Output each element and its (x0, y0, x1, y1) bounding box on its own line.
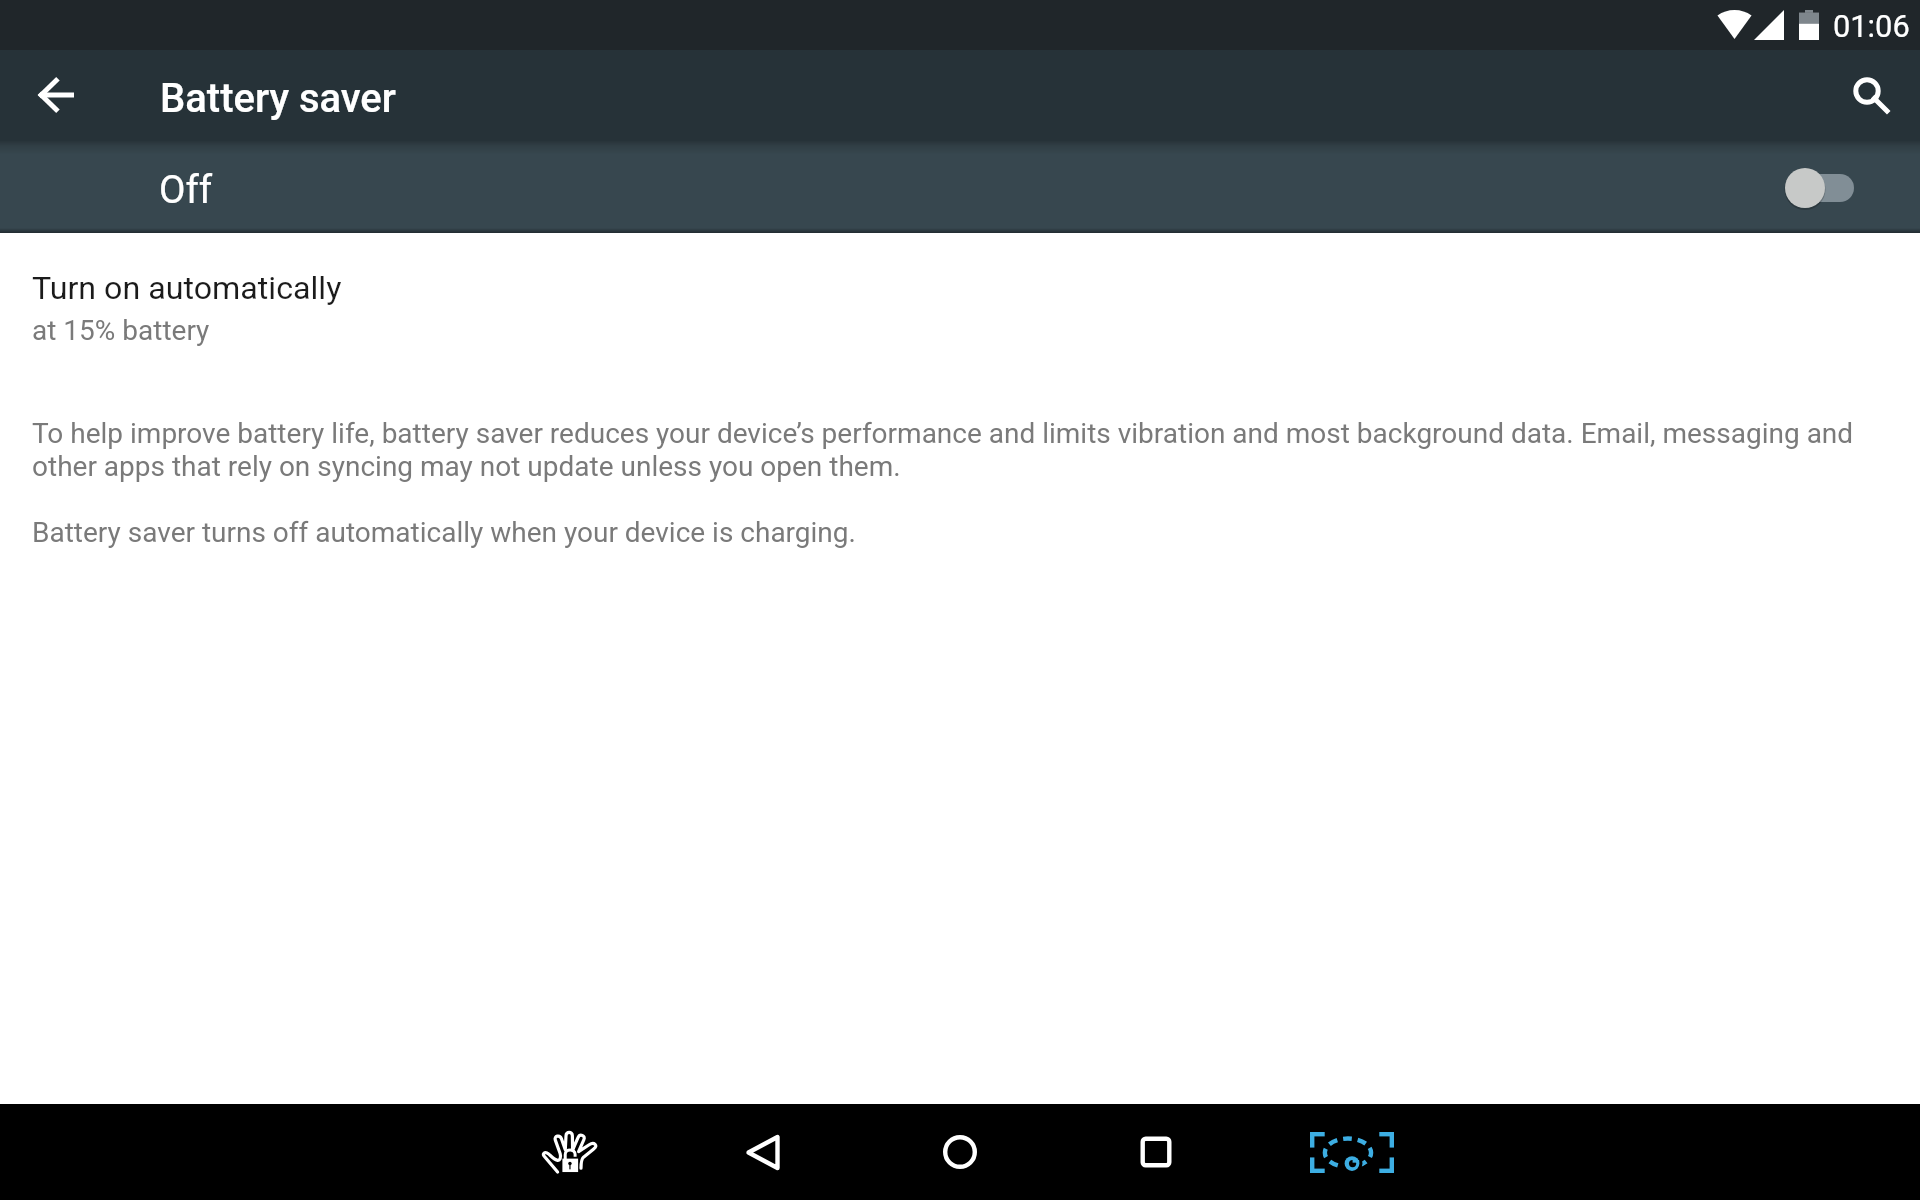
staticText: To help improve battery life, battery sa… (32, 417, 1888, 483)
button[interactable]: Off (0, 141, 1920, 233)
button[interactable]: Battery saver off (1770, 149, 1870, 221)
staticText: Battery saver (160, 75, 396, 122)
button[interactable]: Unpin screen (533, 1117, 605, 1189)
staticText: Turn on automatically (32, 269, 342, 307)
button[interactable]: Navigate up (24, 63, 88, 127)
button[interactable]: Home (924, 1116, 996, 1188)
staticText: Off (159, 167, 213, 212)
button[interactable]: Search (1839, 63, 1903, 127)
button[interactable]: Screen capture (1304, 1116, 1400, 1188)
button[interactable]: Back (727, 1116, 799, 1188)
button[interactable]: Overview (1120, 1116, 1192, 1188)
staticText: at 15% battery (32, 314, 210, 347)
button[interactable]: Turn on automatically (0, 259, 1920, 361)
staticText: Battery saver turns off automatically wh… (32, 516, 856, 549)
staticText: 01:06 (1833, 8, 1910, 44)
